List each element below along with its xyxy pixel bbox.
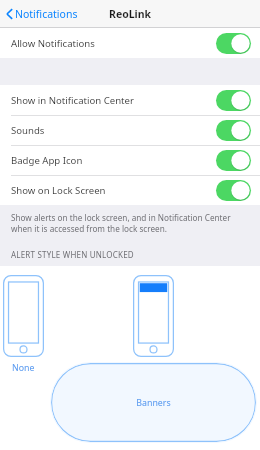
button[interactable]: None (0, 275, 47, 374)
button[interactable]: Badge App Icon (0, 145, 260, 175)
button[interactable]: Toggle on (216, 33, 251, 54)
button[interactable]: Toggle on (216, 180, 251, 201)
staticText: ReoLink (109, 7, 152, 21)
button[interactable]: Toggle on (216, 150, 251, 171)
button[interactable]: Toggle on (216, 120, 251, 141)
button[interactable]: Banners (47, 275, 260, 443)
staticText: Allow Notifications (11, 37, 95, 50)
staticText: Show alerts on the lock screen, and in N… (11, 212, 231, 234)
button[interactable]: Allow Notifications (0, 28, 260, 58)
staticText: ALERT STYLE WHEN UNLOCKED (11, 249, 134, 260)
staticText: Banners (136, 397, 171, 409)
staticText: Notifications (15, 7, 78, 21)
button[interactable]: Toggle on (216, 90, 251, 111)
button[interactable]: Show in Notification Center (0, 85, 260, 115)
button[interactable]: Notifications (0, 3, 86, 25)
button[interactable]: Sounds (0, 115, 260, 145)
button[interactable]: Show on Lock Screen (0, 175, 260, 205)
staticText: Show on Lock Screen (11, 184, 106, 197)
staticText: Sounds (11, 124, 45, 137)
staticText: None (12, 362, 35, 374)
staticText: Badge App Icon (11, 154, 83, 167)
staticText: Show in Notification Center (11, 94, 134, 107)
